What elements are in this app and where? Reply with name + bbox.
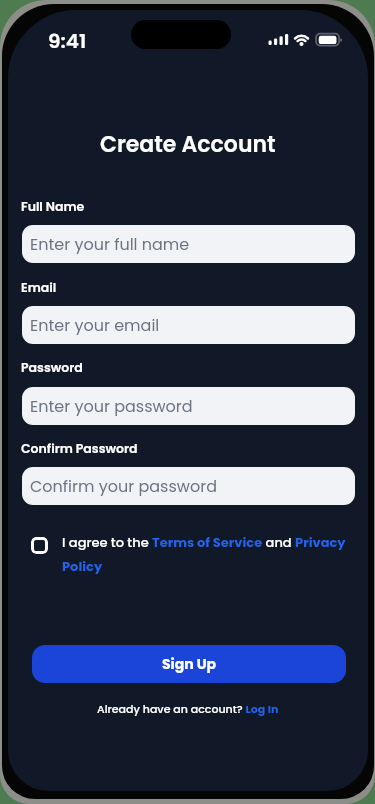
button[interactable] [31, 537, 48, 554]
staticText: Create Account [100, 129, 276, 160]
staticText: Password [21, 359, 83, 376]
staticText: Enter your password [30, 395, 193, 417]
button[interactable]: Enter your full name [22, 225, 355, 263]
button[interactable]: I agree to the Terms of Service and Priv… [62, 533, 346, 551]
staticText: Sign Up [162, 654, 217, 674]
button[interactable]: Sign Up [32, 645, 346, 683]
staticText: Confirm Password [21, 440, 138, 457]
button[interactable]: Policy [62, 557, 103, 575]
staticText: Full Name [21, 198, 85, 215]
staticText: Enter your full name [30, 233, 190, 255]
staticText: Email [21, 279, 57, 296]
button[interactable]: Enter your password [22, 387, 355, 425]
button[interactable]: Enter your email [22, 306, 355, 344]
staticText: 9:41 [48, 27, 87, 55]
staticText: Confirm your password [30, 475, 217, 497]
button[interactable]: Already have an account? Log In [97, 701, 279, 716]
button[interactable]: Confirm your password [22, 467, 355, 505]
staticText: Enter your email [30, 314, 160, 336]
